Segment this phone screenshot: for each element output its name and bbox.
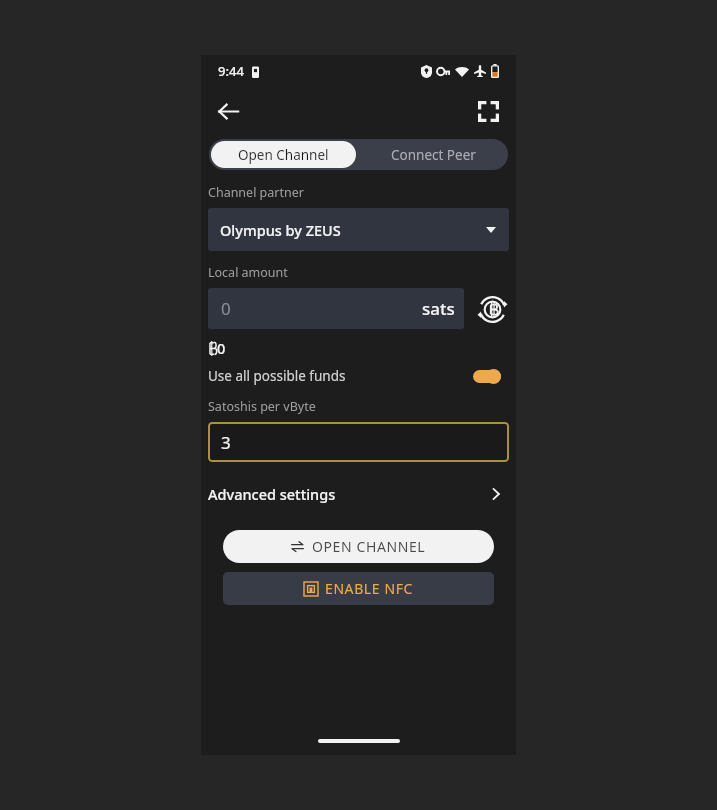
- button[interactable]: Advanced settings: [208, 480, 509, 508]
- staticText: sats: [422, 297, 455, 320]
- staticText: OPEN CHANNEL: [312, 537, 426, 556]
- staticText: 9:44: [218, 62, 244, 80]
- staticText: 0: [217, 338, 226, 358]
- button[interactable]: Switch units to bitcoin: [475, 292, 509, 326]
- button[interactable]: Back: [207, 90, 249, 132]
- button[interactable]: Use all possible funds: [208, 363, 509, 389]
- staticText: Connect Peer: [391, 146, 476, 164]
- staticText: ENABLE NFC: [325, 579, 413, 598]
- staticText: Channel partner: [208, 184, 304, 201]
- button[interactable]: 0: [208, 288, 464, 329]
- staticText: Open Channel: [238, 146, 329, 164]
- staticText: Use all possible funds: [208, 367, 346, 385]
- staticText: 3: [221, 431, 231, 454]
- button[interactable]: Open Channel: [211, 141, 356, 168]
- staticText: 0: [221, 297, 231, 320]
- button[interactable]: OPEN CHANNEL: [223, 530, 494, 563]
- button[interactable]: Connect Peer: [358, 139, 508, 170]
- button[interactable]: Olympus by ZEUS: [208, 208, 509, 251]
- staticText: Olympus by ZEUS: [220, 220, 341, 240]
- staticText: Advanced settings: [208, 484, 336, 504]
- staticText: Satoshis per vByte: [208, 398, 316, 415]
- button[interactable]: ENABLE NFC: [223, 572, 494, 605]
- button[interactable]: Scan QR code: [468, 91, 508, 131]
- button[interactable]: 3: [208, 422, 509, 462]
- staticText: Local amount: [208, 264, 288, 281]
